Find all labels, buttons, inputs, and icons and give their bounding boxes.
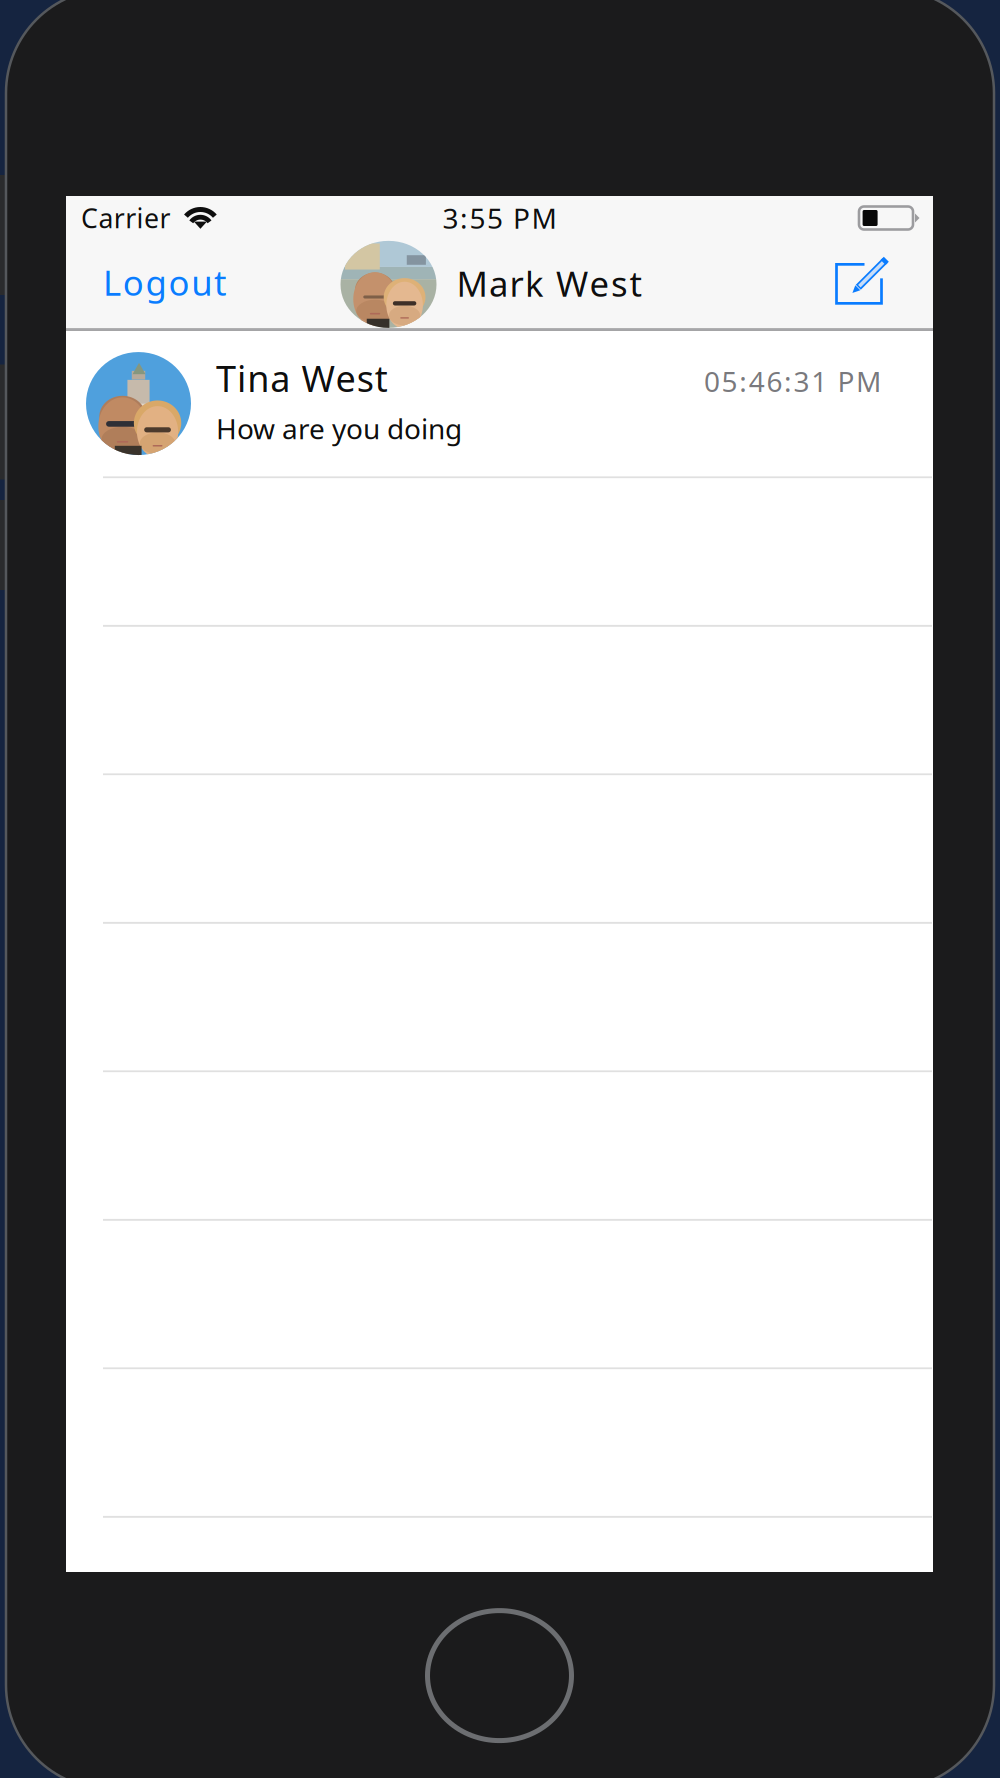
staticText: 05:46:31 PM: [704, 362, 881, 400]
staticText: Logout: [103, 259, 227, 305]
button[interactable]: Logout: [103, 245, 243, 319]
staticText: Mark West: [456, 260, 642, 306]
staticText: How are you doing: [216, 410, 462, 447]
staticText: Carrier: [81, 200, 170, 236]
button[interactable]: Compose: [819, 246, 893, 318]
staticText: Tina West: [216, 354, 388, 402]
staticText: 3:55 PM: [442, 199, 556, 237]
button[interactable]: Tina West: [66, 331, 933, 476]
